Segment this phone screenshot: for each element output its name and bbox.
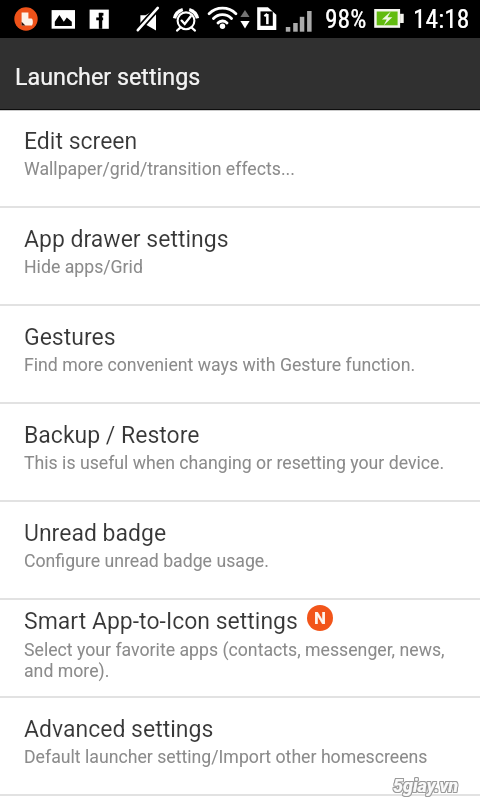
staticText: Launcher settings: [15, 63, 201, 90]
staticText: 5giay.vn: [393, 775, 458, 796]
button[interactable]: Edit screen: [0, 109, 480, 207]
staticText: 5giay.vn: [394, 774, 459, 795]
staticText: Default launcher setting/Import other ho…: [24, 747, 428, 768]
staticText: Configure unread badge usage.: [24, 551, 269, 572]
staticText: Unread badge: [24, 520, 167, 547]
button[interactable]: App drawer settings: [0, 207, 480, 305]
staticText: 5giay.vn: [392, 776, 457, 797]
staticText: 5giay.vn: [393, 776, 458, 797]
staticText: Gestures: [24, 324, 116, 351]
button[interactable]: Smart App-to-Icon settings: [0, 599, 480, 697]
button[interactable]: Gestures: [0, 305, 480, 403]
staticText: 5giay.vn: [393, 774, 458, 795]
staticText: Backup / Restore: [24, 422, 200, 449]
button[interactable]: Backup / Restore: [0, 403, 480, 501]
staticText: Hide apps/Grid: [24, 257, 143, 278]
staticText: 14:18: [413, 4, 470, 34]
staticText: 5giay.vn: [394, 776, 459, 797]
staticText: Smart App-to-Icon settings: [24, 608, 298, 635]
staticText: 5giay.vn: [392, 775, 457, 796]
button[interactable]: Unread badge: [0, 501, 480, 599]
staticText: Wallpaper/grid/transition effects...: [24, 159, 295, 180]
staticText: Find more convenient ways with Gesture f…: [24, 355, 416, 376]
button[interactable]: Advanced settings: [0, 697, 480, 795]
staticText: 5giay.vn: [392, 774, 457, 795]
staticText: N: [314, 608, 326, 628]
staticText: This is useful when changing or resettin…: [24, 453, 445, 474]
other: Status icons: notifications, silent mode…: [0, 0, 480, 38]
staticText: 5giay.vn: [394, 775, 459, 796]
staticText: Advanced settings: [24, 716, 214, 743]
staticText: Edit screen: [24, 128, 138, 155]
staticText: 98%: [325, 4, 367, 34]
staticText: App drawer settings: [24, 226, 229, 253]
staticText: Select your favorite apps (contacts, mes…: [24, 640, 445, 681]
